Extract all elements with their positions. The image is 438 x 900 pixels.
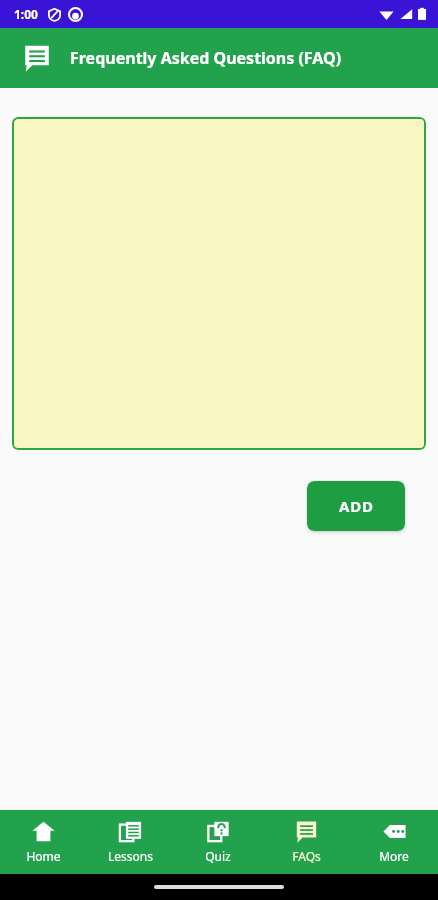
button[interactable]: More xyxy=(350,820,438,864)
staticText: More xyxy=(379,848,409,864)
button[interactable]: ADD xyxy=(307,481,405,531)
staticText: Frequently Asked Questions (FAQ) xyxy=(70,47,342,69)
button[interactable]: Lessons xyxy=(87,820,174,864)
staticText: Quiz xyxy=(205,848,231,864)
button[interactable]: FAQs xyxy=(262,820,350,864)
staticText: ADD xyxy=(339,496,374,516)
staticText: Home xyxy=(26,848,61,864)
staticText: FAQs xyxy=(292,848,321,864)
staticText: 1:00 xyxy=(14,6,38,22)
staticText: Lessons xyxy=(108,848,153,864)
button[interactable] xyxy=(12,117,426,450)
button[interactable]: FAQ messages xyxy=(20,41,54,75)
button[interactable]: Home xyxy=(0,820,87,864)
button[interactable]: Quiz xyxy=(174,820,262,864)
